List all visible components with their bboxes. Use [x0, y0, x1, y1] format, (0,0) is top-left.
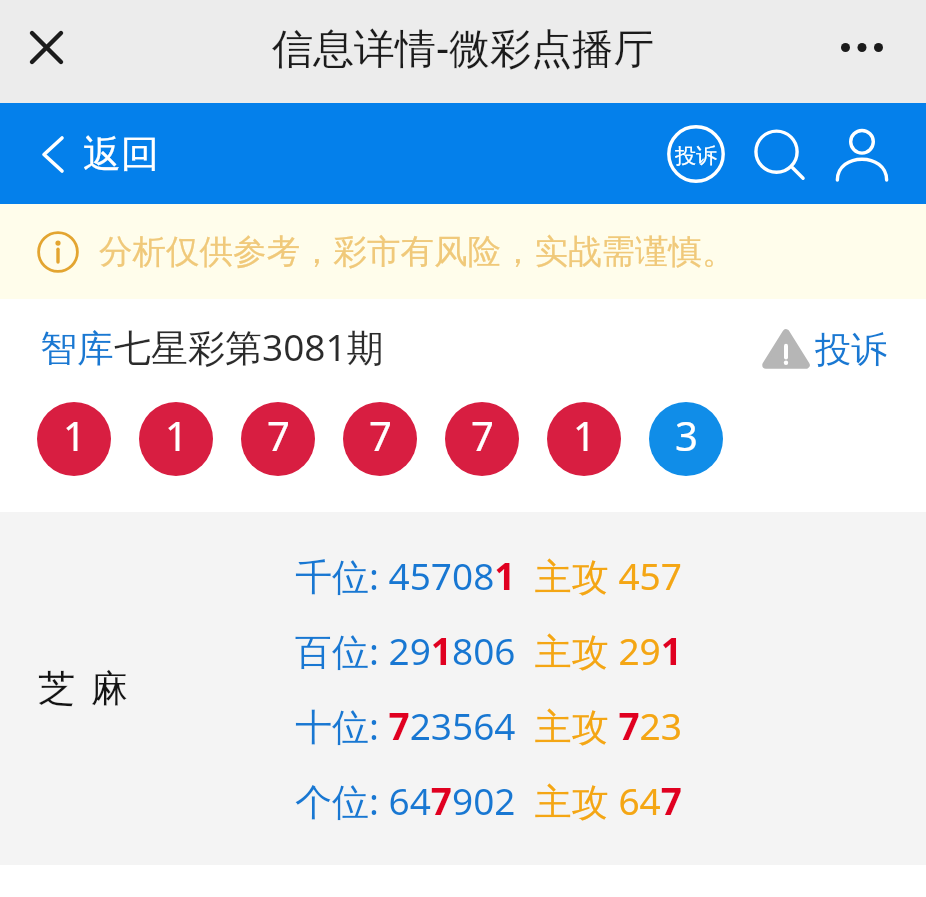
staticText: 千位: 457081 主攻 457 — [295, 550, 682, 601]
staticText: 十位: 723564 主攻 723 — [295, 700, 682, 751]
staticText: 投诉 — [675, 143, 717, 169]
button[interactable]: 3 — [649, 402, 723, 476]
staticText: 1 — [165, 408, 188, 462]
staticText: 智库七星彩第3081期 — [40, 321, 384, 372]
staticText: 投诉 — [815, 327, 887, 372]
staticText: 信息详情-微彩点播厅 — [272, 19, 655, 75]
button[interactable]: Profile — [826, 118, 898, 190]
button[interactable]: 1 — [547, 402, 621, 476]
button[interactable]: 芝 — [0, 512, 926, 865]
staticText: 麻 — [91, 665, 128, 712]
button[interactable]: Close — [11, 12, 81, 82]
button[interactable]: 7 — [241, 402, 315, 476]
staticText: 3 — [675, 408, 698, 462]
staticText: 个位: 647902 主攻 647 — [295, 775, 682, 826]
button[interactable]: Search — [744, 118, 816, 190]
staticText: 芝 — [38, 665, 75, 712]
button[interactable]: 投诉 — [660, 118, 732, 190]
button[interactable]: 返回 — [43, 130, 159, 178]
staticText: 返回 — [83, 130, 159, 178]
staticText: 1 — [63, 408, 86, 462]
button[interactable]: 7 — [343, 402, 417, 476]
staticText: 7 — [369, 408, 392, 462]
button[interactable]: 1 — [139, 402, 213, 476]
button[interactable]: More options — [827, 12, 897, 82]
button[interactable]: 7 — [445, 402, 519, 476]
staticText: 1 — [573, 408, 596, 462]
button[interactable]: 1 — [37, 402, 111, 476]
staticText: 百位: 291806 主攻 291 — [295, 625, 682, 676]
button[interactable]: 投诉 — [763, 324, 887, 369]
staticText: 分析仅供参考，彩市有风险，实战需谨慎。 — [99, 231, 736, 273]
staticText: 7 — [267, 408, 290, 462]
staticText: 7 — [471, 408, 494, 462]
